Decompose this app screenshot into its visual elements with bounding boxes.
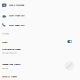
staticText: Start audio call — [9, 24, 25, 26]
staticText: Send a message — [9, 4, 24, 6]
button[interactable]: Change chat theme — [0, 60, 80, 72]
button[interactable]: Mute — [0, 37, 80, 46]
staticText: Mute — [2, 41, 7, 43]
button[interactable]: Start audio call — [0, 20, 80, 30]
button[interactable]: Notification sound — [0, 45, 80, 57]
staticText: Settings — [2, 33, 9, 35]
staticText: Default — [2, 67, 8, 69]
staticText: Start video call — [9, 14, 25, 17]
button[interactable]: Send a message — [0, 0, 80, 9]
button[interactable]: Block & report — [0, 72, 80, 80]
staticText: Block & report — [2, 75, 17, 78]
staticText: Notification sound — [2, 48, 20, 50]
staticText: Change chat theme — [2, 63, 20, 65]
staticText: Default (ringtone) — [2, 52, 17, 54]
button[interactable]: Start video call — [0, 10, 80, 20]
